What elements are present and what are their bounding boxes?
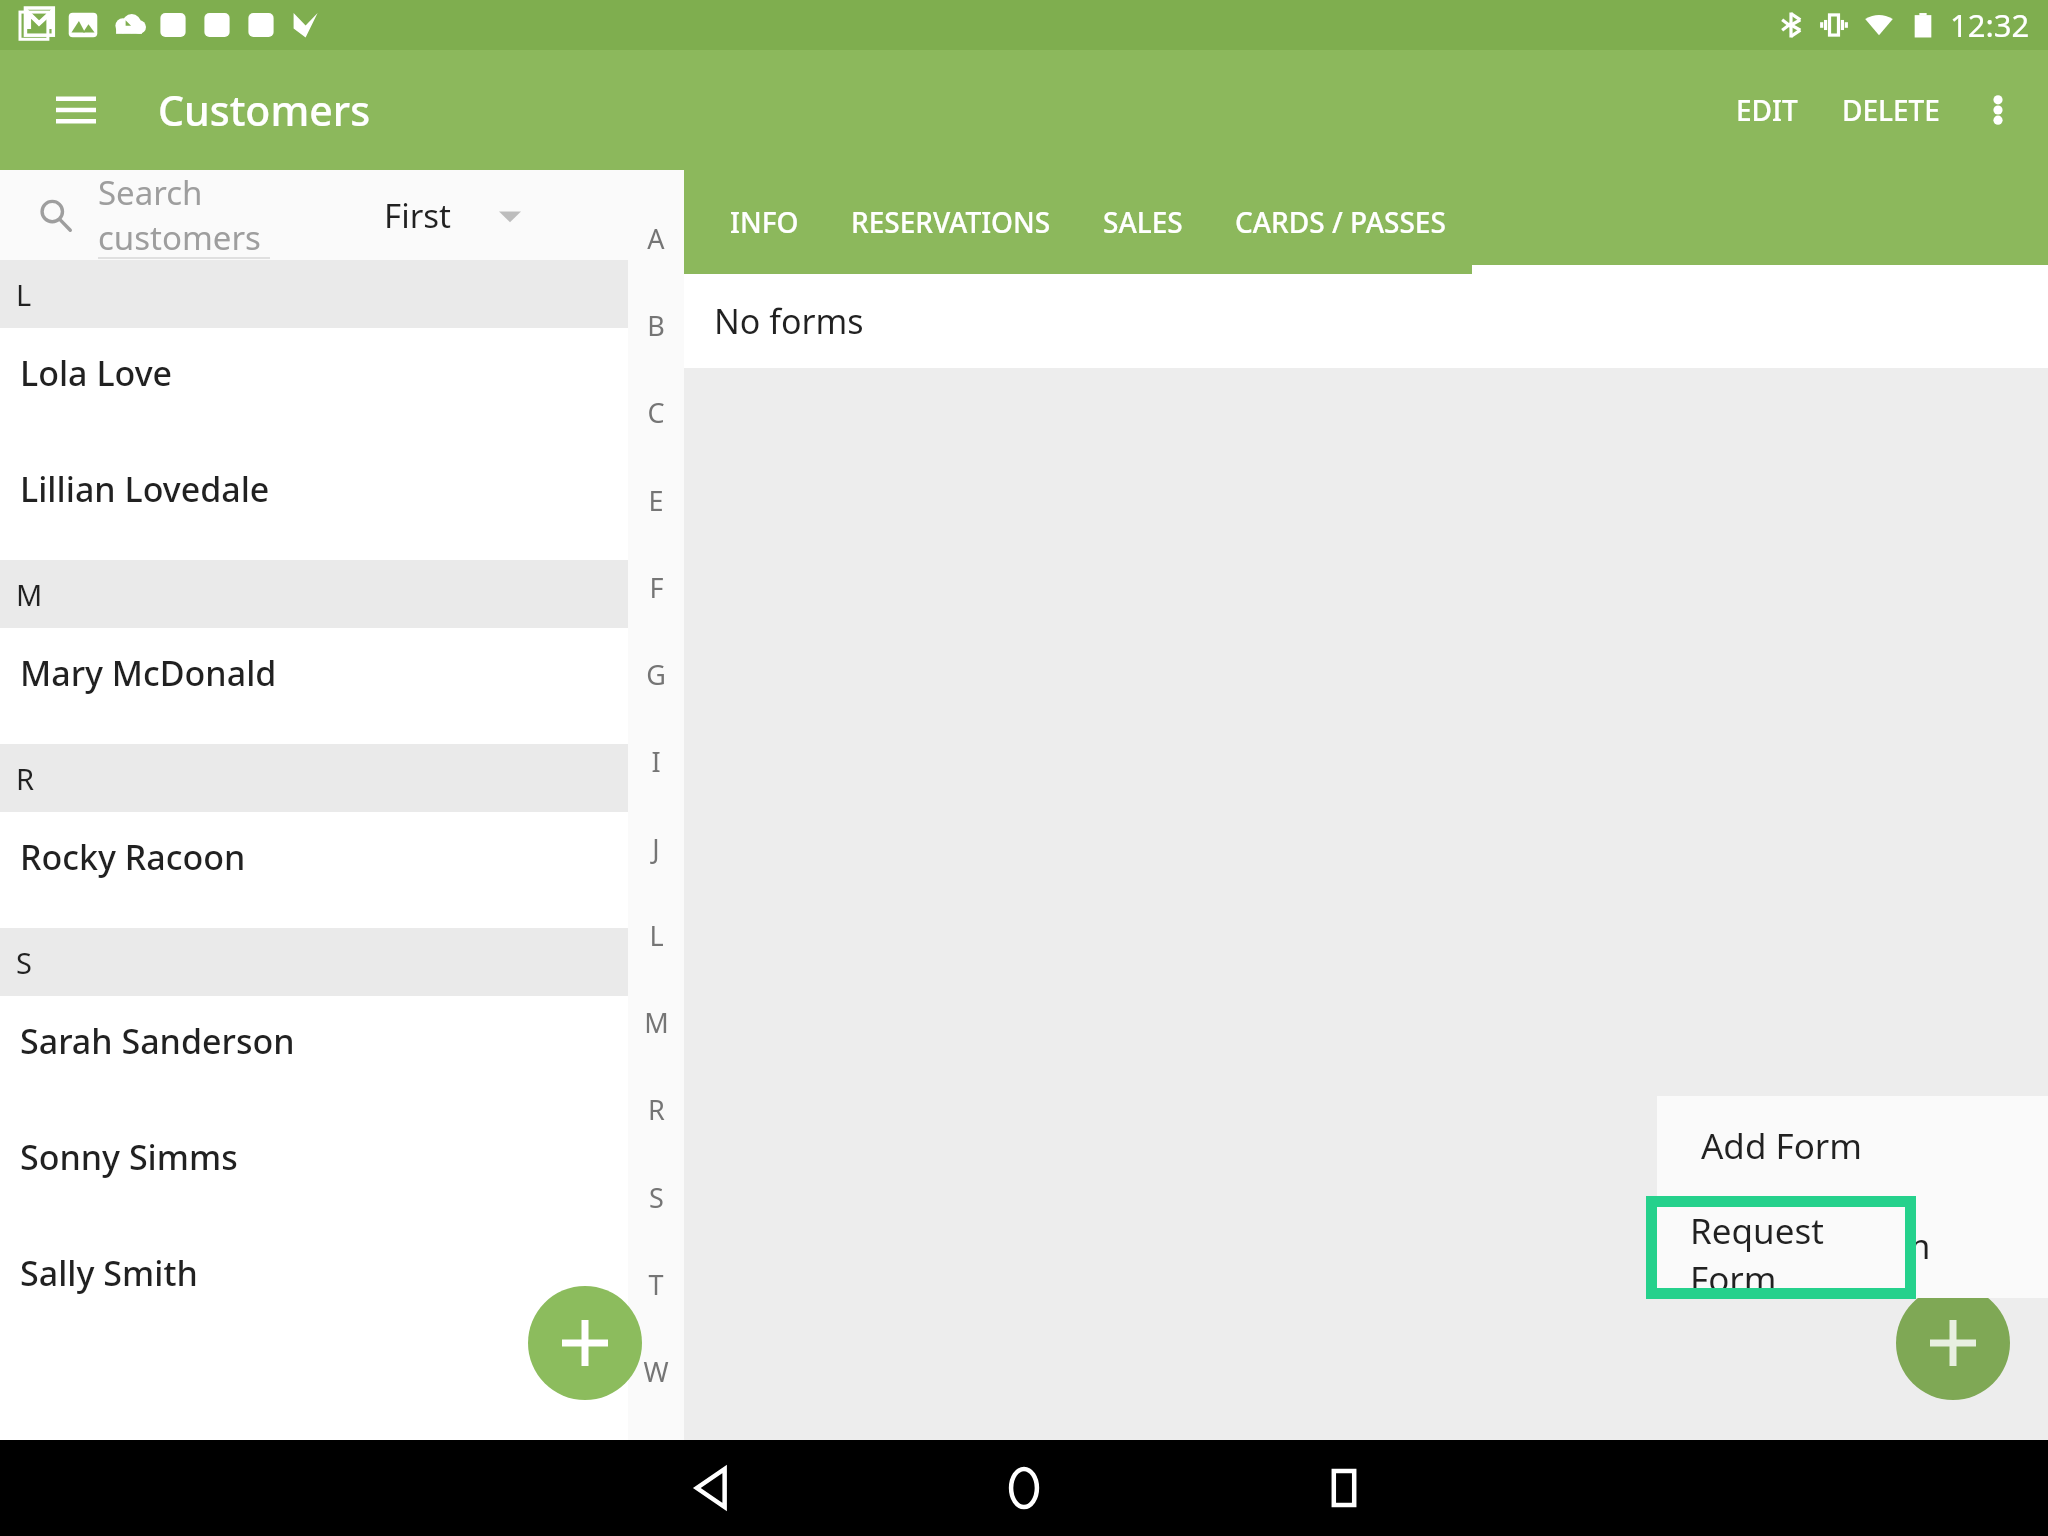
button[interactable]: Rocky Racoon bbox=[0, 812, 628, 928]
button[interactable]: A bbox=[628, 170, 684, 1440]
button[interactable]: Add Form bbox=[1657, 1096, 2048, 1196]
button[interactable]: Recent apps bbox=[1302, 1446, 1386, 1530]
button[interactable]: Sally Smith bbox=[0, 1228, 628, 1344]
button[interactable]: Open navigation menu bbox=[38, 72, 114, 148]
staticText: Add Form bbox=[1701, 1122, 1863, 1170]
staticText: T bbox=[648, 1266, 664, 1303]
button[interactable]: CARDS / PASSES bbox=[1209, 170, 1472, 274]
staticText: Request Form bbox=[1701, 1222, 1931, 1270]
button[interactable]: Home bbox=[982, 1446, 1066, 1530]
button[interactable]: INFO bbox=[704, 170, 825, 274]
staticText: No forms bbox=[714, 298, 864, 344]
button[interactable]: Search customers bbox=[98, 170, 368, 260]
staticText: 12:32 bbox=[1950, 4, 2030, 46]
staticText: CARDS / PASSES bbox=[1235, 203, 1446, 241]
staticText: B bbox=[647, 307, 665, 344]
staticText: Lillian Lovedale bbox=[20, 466, 270, 512]
button[interactable]: Add bbox=[528, 1286, 642, 1400]
button[interactable]: RESERVATIONS bbox=[825, 170, 1077, 274]
staticText: G bbox=[646, 656, 666, 693]
staticText: Search customers bbox=[98, 170, 368, 260]
button[interactable]: Sonny Simms bbox=[0, 1112, 628, 1228]
staticText: R bbox=[648, 1091, 665, 1128]
button[interactable]: More options bbox=[1962, 74, 2034, 146]
staticText: First bbox=[384, 193, 451, 238]
staticText: R bbox=[16, 759, 628, 798]
staticText: Customers bbox=[158, 82, 371, 138]
staticText: Lola Love bbox=[20, 350, 173, 396]
staticText: W bbox=[643, 1353, 669, 1390]
staticText: L bbox=[16, 275, 628, 314]
staticText: A bbox=[647, 220, 665, 257]
staticText: DELETE bbox=[1842, 91, 1940, 129]
staticText: M bbox=[16, 575, 628, 614]
staticText: F bbox=[649, 569, 664, 606]
button[interactable]: No forms bbox=[684, 274, 2048, 368]
button[interactable]: First bbox=[378, 179, 527, 252]
button[interactable]: FORMS bbox=[1472, 170, 2048, 274]
button[interactable]: SALES bbox=[1077, 170, 1209, 274]
button[interactable]: Sarah Sanderson bbox=[0, 996, 628, 1112]
staticText: S bbox=[649, 1179, 664, 1216]
button[interactable]: Lillian Lovedale bbox=[0, 444, 628, 560]
staticText: L bbox=[649, 917, 664, 954]
button[interactable]: Lola Love bbox=[0, 328, 628, 444]
staticText: RESERVATIONS bbox=[851, 203, 1051, 241]
staticText: Request Form bbox=[1690, 1207, 1905, 1288]
staticText: S bbox=[16, 943, 628, 982]
staticText: J bbox=[652, 830, 660, 867]
staticText: Rocky Racoon bbox=[20, 834, 246, 880]
staticText: E bbox=[648, 482, 664, 519]
button[interactable]: EDIT bbox=[1714, 69, 1820, 151]
staticText: Sally Smith bbox=[20, 1250, 198, 1296]
staticText: Sonny Simms bbox=[20, 1134, 238, 1180]
button[interactable]: Add bbox=[1896, 1286, 2010, 1400]
staticText: INFO bbox=[730, 203, 799, 241]
staticText: EDIT bbox=[1736, 91, 1798, 129]
staticText: I bbox=[651, 743, 661, 780]
staticText: Sarah Sanderson bbox=[20, 1018, 295, 1064]
staticText: Mary McDonald bbox=[20, 650, 277, 696]
staticText: C bbox=[647, 394, 665, 431]
staticText: M bbox=[644, 1004, 669, 1041]
button[interactable]: Mary McDonald bbox=[0, 628, 628, 744]
button[interactable]: DELETE bbox=[1820, 69, 1962, 151]
staticText: SALES bbox=[1103, 203, 1183, 241]
button[interactable]: Request Form bbox=[1657, 1196, 2048, 1296]
button[interactable]: Back bbox=[672, 1446, 756, 1530]
